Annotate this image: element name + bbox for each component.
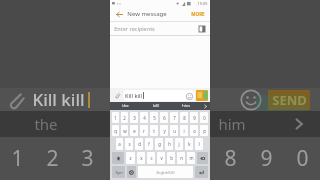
- staticText: 2: [123, 115, 126, 121]
- staticText: j: [178, 141, 180, 147]
- button[interactable]: a: [116, 138, 123, 150]
- button[interactable]: 8: [180, 112, 188, 123]
- button[interactable]: Attach: [112, 90, 123, 101]
- staticText: the: [122, 103, 129, 109]
- staticText: n: [180, 155, 183, 161]
- button[interactable]: i: [180, 125, 188, 136]
- button[interactable]: Add recipient from contacts: [197, 24, 206, 33]
- staticText: Enter recipients: [114, 25, 155, 32]
- staticText: 3: [133, 115, 136, 121]
- staticText: Kill kill: [32, 88, 85, 111]
- staticText: x: [140, 155, 143, 161]
- button[interactable]: p: [200, 125, 208, 136]
- button[interactable]: x: [137, 152, 145, 164]
- button[interactable]: him: [171, 102, 201, 110]
- button[interactable]: v: [157, 152, 165, 164]
- button[interactable]: 1: [112, 112, 119, 123]
- button[interactable]: Keyboard settings: [127, 166, 136, 178]
- button[interactable]: English(UK): [138, 166, 193, 178]
- staticText: z: [129, 155, 132, 161]
- staticText: 8: [183, 115, 186, 121]
- button[interactable]: d: [135, 138, 143, 150]
- staticText: 4: [143, 115, 146, 121]
- staticText: l: [198, 141, 200, 147]
- staticText: g: [158, 141, 161, 147]
- staticText: him: [218, 114, 246, 134]
- staticText: the: [34, 114, 58, 134]
- button[interactable]: c: [147, 152, 155, 164]
- button[interactable]: m: [187, 152, 195, 164]
- button[interactable]: l: [195, 138, 203, 150]
- staticText: c: [150, 155, 153, 161]
- button[interactable]: t: [150, 125, 158, 136]
- staticText: New message: [127, 10, 167, 18]
- button[interactable]: z: [126, 152, 135, 164]
- staticText: p: [203, 128, 206, 134]
- staticText: f: [148, 141, 150, 147]
- staticText: Kill kill: [125, 92, 142, 99]
- button[interactable]: MORE: [189, 9, 207, 19]
- button[interactable]: w: [121, 125, 128, 136]
- button[interactable]: o: [190, 125, 198, 136]
- staticText: m: [189, 155, 194, 161]
- staticText: t: [153, 128, 155, 134]
- button[interactable]: 2: [121, 112, 128, 123]
- staticText: 9: [260, 144, 273, 173]
- button[interactable]: y: [160, 125, 168, 136]
- button[interactable]: 6: [160, 112, 168, 123]
- button[interactable]: j: [175, 138, 183, 150]
- button[interactable]: Back: [113, 8, 125, 20]
- staticText: v: [160, 155, 163, 161]
- staticText: kill: [153, 103, 159, 109]
- staticText: b: [170, 155, 173, 161]
- button[interactable]: 0: [200, 112, 208, 123]
- button[interactable]: n: [177, 152, 185, 164]
- button[interactable]: Backspace: [197, 152, 208, 164]
- button[interactable]: Sym: [112, 166, 125, 178]
- button[interactable]: g: [155, 138, 163, 150]
- staticText: MORE: [191, 11, 205, 17]
- button[interactable]: q: [112, 125, 119, 136]
- staticText: i: [183, 128, 185, 134]
- staticText: 1: [114, 115, 117, 121]
- button[interactable]: r: [140, 125, 148, 136]
- staticText: u: [173, 128, 176, 134]
- staticText: 2: [46, 144, 59, 173]
- staticText: 9: [193, 115, 196, 121]
- button[interactable]: Kill kill: [123, 90, 195, 101]
- button[interactable]: k: [185, 138, 193, 150]
- staticText: y: [163, 128, 166, 134]
- button[interactable]: the: [110, 102, 141, 110]
- button[interactable]: s: [125, 138, 133, 150]
- button[interactable]: h: [165, 138, 173, 150]
- staticText: 5: [153, 115, 156, 121]
- button[interactable]: kill: [141, 102, 171, 110]
- staticText: Sym: [115, 170, 123, 175]
- button[interactable]: Enter recipients: [110, 22, 210, 35]
- staticText: 15:05: [197, 1, 208, 6]
- button[interactable]: More suggestions: [201, 102, 210, 110]
- button[interactable]: 5: [150, 112, 158, 123]
- button[interactable]: Shift: [112, 152, 124, 164]
- staticText: him: [182, 103, 190, 109]
- button[interactable]: e: [130, 125, 138, 136]
- staticText: English(UK): [156, 170, 175, 175]
- button[interactable]: u: [170, 125, 178, 136]
- button[interactable]: f: [145, 138, 153, 150]
- staticText: r r: [117, 1, 121, 6]
- button[interactable]: Emoji: [185, 92, 193, 100]
- button[interactable]: b: [167, 152, 175, 164]
- button[interactable]: Enter: [195, 166, 208, 178]
- button[interactable]: 7: [170, 112, 178, 123]
- button[interactable]: 3: [130, 112, 138, 123]
- button[interactable]: 9: [190, 112, 198, 123]
- staticText: s: [128, 141, 131, 147]
- staticText: e: [133, 128, 136, 134]
- staticText: SEND: [272, 91, 307, 109]
- button[interactable]: 4: [140, 112, 148, 123]
- staticText: r: [143, 128, 145, 134]
- button[interactable]: Send: [196, 90, 208, 101]
- staticText: 8: [224, 144, 237, 173]
- staticText: w: [123, 128, 127, 134]
- staticText: 1: [11, 144, 24, 173]
